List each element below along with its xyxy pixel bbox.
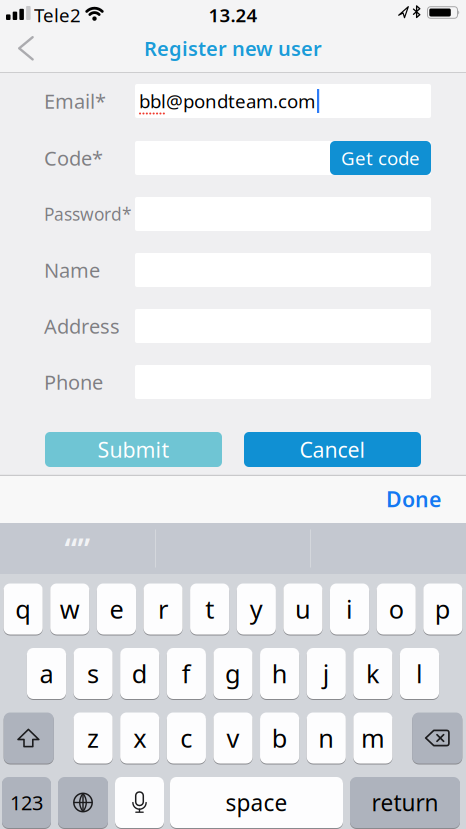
staticText: j [323, 657, 330, 690]
button[interactable]: Code [135, 141, 431, 175]
staticText: Phone [44, 369, 103, 395]
staticText: Submit [97, 435, 169, 464]
staticText: Get code [341, 146, 420, 170]
button[interactable]: s [73, 647, 113, 699]
staticText: s [87, 657, 99, 690]
staticText: Cancel [299, 435, 365, 464]
staticText: y [250, 592, 263, 626]
button[interactable]: Back [0, 25, 44, 69]
button[interactable]: o [377, 583, 416, 635]
staticText: w [60, 592, 80, 626]
staticText: t [205, 592, 214, 626]
button[interactable]: z [73, 712, 113, 764]
button[interactable]: y [237, 583, 276, 635]
staticText: e [109, 592, 123, 626]
staticText: p [435, 592, 451, 626]
staticText: 123 [10, 789, 43, 816]
button[interactable]: g [213, 647, 253, 699]
button[interactable]: j [307, 647, 346, 699]
staticText: m [361, 721, 385, 755]
staticText: return [371, 787, 438, 817]
button[interactable]: d [120, 647, 159, 699]
button[interactable]: Submit [45, 432, 222, 467]
button[interactable]: Dictate [115, 776, 164, 828]
staticText: q [15, 592, 31, 626]
button[interactable]: u [283, 583, 322, 635]
button[interactable]: Done [386, 475, 466, 523]
button[interactable]: Numbers [2, 776, 51, 828]
staticText: n [318, 721, 334, 755]
button[interactable]: n [307, 712, 346, 764]
staticText: c [180, 721, 192, 755]
staticText: o [389, 592, 404, 626]
staticText: Name [44, 257, 100, 283]
button[interactable]: Quoted text suggestion [0, 523, 155, 574]
button[interactable]: m [353, 712, 392, 764]
button[interactable]: x [120, 712, 159, 764]
staticText: r [158, 592, 168, 626]
staticText: “” [64, 528, 90, 569]
staticText: u [295, 592, 311, 626]
button[interactable]: v [213, 712, 253, 764]
button[interactable]: b [260, 712, 299, 764]
button[interactable]: Email [135, 84, 431, 118]
button[interactable]: r [143, 583, 183, 635]
button[interactable]: i [330, 583, 369, 635]
staticText: l [416, 657, 423, 690]
staticText: Email* [44, 88, 106, 114]
staticText: h [272, 657, 288, 690]
staticText: d [132, 657, 148, 690]
button[interactable]: q [4, 583, 43, 635]
button[interactable]: space [170, 776, 343, 828]
staticText: Tele2 [34, 2, 81, 27]
button[interactable]: return [350, 776, 460, 828]
staticText: Password* [44, 202, 132, 225]
button[interactable]: e [97, 583, 136, 635]
staticText: space [225, 787, 287, 817]
staticText: k [366, 657, 380, 690]
staticText: Address [44, 313, 120, 339]
button[interactable]: t [190, 583, 229, 635]
staticText: x [133, 721, 146, 755]
staticText: bbl@pondteam.com [139, 89, 315, 113]
button[interactable]: c [167, 712, 206, 764]
button[interactable]: a [27, 647, 66, 699]
staticText: v [226, 721, 239, 755]
staticText: Register new user [144, 35, 322, 62]
button[interactable]: l [400, 647, 439, 699]
staticText: Code* [44, 145, 103, 171]
staticText: i [346, 592, 353, 626]
staticText: b [272, 721, 288, 755]
staticText: a [39, 657, 53, 690]
button[interactable]: p [423, 583, 462, 635]
button[interactable]: h [260, 647, 299, 699]
button[interactable]: Cancel [244, 432, 421, 467]
button[interactable]: w [50, 583, 89, 635]
button[interactable]: Next keyboard [58, 776, 108, 828]
button[interactable]: Shift [4, 712, 54, 764]
staticText: Done [386, 485, 441, 513]
staticText: z [87, 721, 99, 755]
button[interactable]: Get code [330, 141, 431, 175]
button[interactable]: f [167, 647, 206, 699]
button[interactable]: Delete [412, 712, 462, 764]
staticText: 13.24 [208, 2, 257, 27]
staticText: f [182, 657, 191, 690]
button[interactable]: k [353, 647, 392, 699]
staticText: g [225, 657, 241, 690]
